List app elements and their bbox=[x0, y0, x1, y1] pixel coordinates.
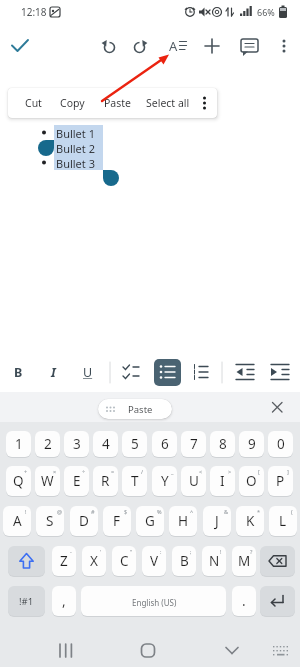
staticText: * bbox=[257, 508, 261, 515]
staticText: Y bbox=[161, 472, 169, 490]
button[interactable]: G bbox=[136, 506, 164, 536]
staticText: 2 bbox=[44, 435, 52, 453]
staticText: Q bbox=[13, 472, 24, 490]
staticText: 4 bbox=[102, 435, 110, 453]
staticText: H bbox=[178, 512, 189, 530]
button[interactable]: Y bbox=[152, 466, 177, 496]
button[interactable] bbox=[96, 32, 124, 60]
button[interactable] bbox=[267, 359, 293, 386]
button[interactable]: D bbox=[70, 506, 98, 536]
button[interactable] bbox=[126, 32, 154, 60]
button[interactable]: 3 bbox=[64, 431, 89, 457]
button[interactable] bbox=[81, 586, 226, 616]
staticText: 5 bbox=[131, 435, 139, 453]
staticText: % bbox=[157, 508, 162, 515]
button[interactable]: W bbox=[35, 466, 60, 496]
button[interactable] bbox=[188, 359, 214, 386]
staticText: U bbox=[83, 364, 93, 381]
button[interactable]: E bbox=[64, 466, 89, 496]
button[interactable] bbox=[232, 359, 258, 386]
button[interactable]: 9 bbox=[239, 431, 264, 457]
button[interactable]: L bbox=[269, 506, 297, 536]
button[interactable]: R bbox=[93, 466, 118, 496]
staticText: T bbox=[131, 472, 139, 490]
button[interactable]: N bbox=[202, 546, 226, 576]
button[interactable] bbox=[266, 396, 290, 420]
button[interactable] bbox=[272, 32, 296, 60]
staticText: ÷ bbox=[82, 468, 86, 475]
staticText: Paste bbox=[128, 403, 153, 416]
button[interactable]: Copy bbox=[50, 93, 94, 113]
staticText: # bbox=[91, 508, 95, 515]
staticText: G bbox=[145, 512, 155, 530]
button[interactable] bbox=[98, 399, 172, 419]
staticText: P bbox=[276, 472, 285, 490]
button[interactable]: C bbox=[112, 546, 136, 576]
staticText: ! bbox=[25, 508, 27, 515]
button[interactable]: K bbox=[236, 506, 264, 536]
staticText: 1 bbox=[15, 435, 23, 453]
button[interactable]: Z bbox=[52, 546, 76, 576]
staticText: ^ bbox=[190, 508, 194, 515]
button[interactable] bbox=[118, 359, 144, 386]
button[interactable]: X bbox=[82, 546, 106, 576]
button[interactable] bbox=[214, 632, 250, 667]
button[interactable]: P bbox=[268, 466, 293, 496]
button[interactable]: S bbox=[36, 506, 64, 536]
button[interactable]: U bbox=[181, 466, 206, 496]
button[interactable] bbox=[163, 32, 191, 60]
button[interactable]: Select all bbox=[138, 93, 198, 113]
button[interactable]: Q bbox=[6, 466, 31, 496]
button[interactable]: , bbox=[52, 586, 76, 616]
staticText: Bullet 3 bbox=[56, 156, 95, 171]
staticText: ' bbox=[100, 548, 102, 555]
button[interactable]: 1 bbox=[6, 431, 31, 457]
button[interactable] bbox=[48, 632, 84, 667]
button[interactable] bbox=[260, 546, 295, 576]
staticText: I bbox=[51, 364, 56, 381]
button[interactable]: Paste bbox=[95, 93, 139, 113]
button[interactable]: 8 bbox=[210, 431, 235, 457]
button[interactable]: U bbox=[73, 362, 103, 382]
button[interactable] bbox=[130, 632, 166, 667]
button[interactable]: T bbox=[122, 466, 147, 496]
button[interactable] bbox=[154, 359, 181, 386]
button[interactable] bbox=[276, 638, 300, 662]
staticText: C bbox=[120, 552, 129, 570]
button[interactable]: 7 bbox=[181, 431, 206, 457]
button[interactable]: 2 bbox=[35, 431, 60, 457]
button[interactable]: H bbox=[169, 506, 197, 536]
button[interactable] bbox=[8, 546, 45, 576]
button[interactable]: 4 bbox=[93, 431, 118, 457]
button[interactable]: J bbox=[203, 506, 231, 536]
button[interactable] bbox=[6, 32, 36, 60]
button[interactable]: M bbox=[232, 546, 256, 576]
button[interactable] bbox=[198, 88, 217, 118]
staticText: ? bbox=[250, 548, 253, 555]
staticText: V bbox=[150, 552, 159, 570]
button[interactable]: F bbox=[103, 506, 131, 536]
button[interactable]: !#1 bbox=[8, 586, 45, 616]
button[interactable]: 6 bbox=[152, 431, 177, 457]
button[interactable]: 5 bbox=[122, 431, 147, 457]
staticText: J bbox=[215, 512, 219, 530]
button[interactable]: . bbox=[232, 586, 256, 616]
button[interactable] bbox=[236, 32, 264, 60]
staticText: K bbox=[246, 512, 255, 530]
button[interactable]: Cut bbox=[13, 93, 53, 113]
button[interactable]: O bbox=[239, 466, 264, 496]
staticText: " bbox=[130, 548, 133, 555]
button[interactable]: B bbox=[172, 546, 196, 576]
button[interactable]: 0 bbox=[268, 431, 293, 457]
staticText: B bbox=[180, 552, 189, 570]
button[interactable]: B bbox=[3, 362, 33, 382]
staticText: Bullet 2 bbox=[56, 141, 95, 156]
staticText: I bbox=[220, 472, 225, 490]
button[interactable] bbox=[198, 32, 226, 60]
button[interactable]: I bbox=[210, 466, 235, 496]
button[interactable]: A bbox=[3, 506, 31, 536]
button[interactable]: I bbox=[38, 362, 68, 382]
staticText: : bbox=[160, 548, 162, 555]
button[interactable] bbox=[260, 586, 295, 616]
button[interactable]: V bbox=[142, 546, 166, 576]
